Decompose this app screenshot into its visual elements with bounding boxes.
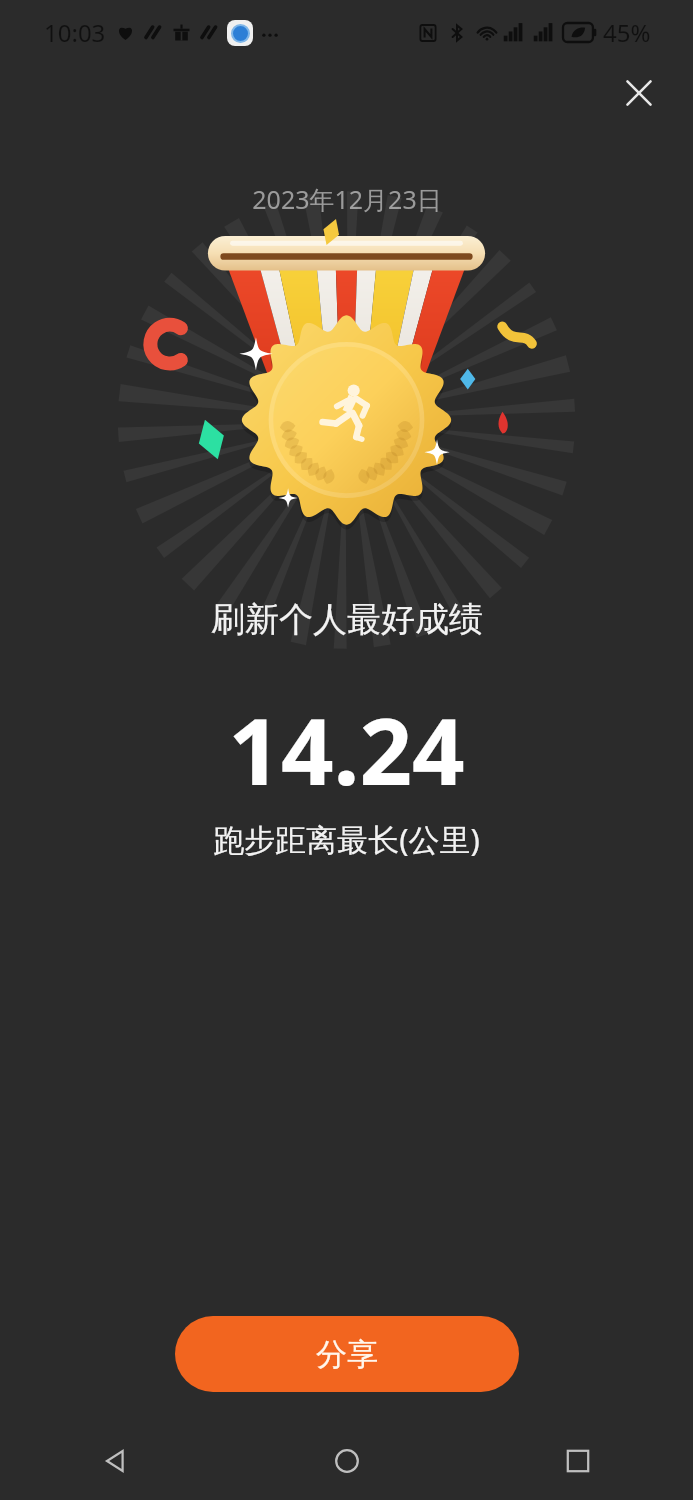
staticText: 10:03 — [44, 16, 106, 49]
button[interactable]: Back — [0, 1422, 231, 1500]
staticText: 14.24 — [228, 687, 465, 812]
staticText: 45% — [603, 16, 651, 49]
staticText: 刷新个人最好成绩 — [211, 598, 483, 641]
button[interactable]: 分享 — [175, 1316, 519, 1392]
button[interactable]: Recents — [462, 1422, 693, 1500]
staticText: 分享 — [316, 1335, 378, 1374]
button[interactable]: Home — [231, 1422, 462, 1500]
staticText: 跑步距离最长(公里) — [213, 818, 480, 860]
button[interactable]: Close — [604, 58, 674, 128]
staticText: 2023年12月23日 — [252, 182, 442, 216]
